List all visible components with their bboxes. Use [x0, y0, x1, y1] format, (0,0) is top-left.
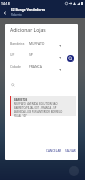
- button[interactable]: Back: [0, 8, 9, 17]
- staticText: Bandeira: [10, 41, 25, 46]
- staticText: SALVAR: [65, 149, 76, 153]
- staticText: SP: [29, 52, 33, 57]
- staticText: Cidade: [10, 64, 22, 69]
- staticText: E2 Bunge Vendedores: [11, 8, 46, 12]
- staticText: FRANCA: [29, 64, 42, 69]
- staticText: Roberto: [11, 13, 22, 17]
- staticText: FILIAL 107: [14, 114, 27, 118]
- staticText: BARRETOS: [14, 98, 28, 102]
- staticText: BARRETO/FILIAL 007 - FRANCA - SP: [14, 106, 57, 110]
- button[interactable]: CANCELAR: [44, 147, 64, 155]
- staticText: UF: [10, 52, 15, 57]
- button[interactable]: Search: [11, 83, 15, 87]
- staticText: MUFFATO AVENIDA SOLUTION SAO: [14, 102, 58, 106]
- button[interactable]: Search stores: [67, 55, 74, 62]
- staticText: AVENIDA LUIS FUR ANTERIOR BORRELO: [14, 110, 63, 114]
- button[interactable]: SALVAR: [63, 147, 78, 155]
- staticText: Adicionar Lojas: [10, 27, 46, 34]
- staticText: MUFFATO: [29, 41, 45, 46]
- staticText: CANCELAR: [46, 149, 62, 153]
- staticText: 14:18: [1, 1, 10, 6]
